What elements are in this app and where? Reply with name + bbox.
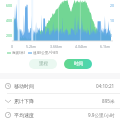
button[interactable]: 累计下降: [0, 94, 120, 108]
staticText: 平均速度: [14, 112, 34, 118]
staticText: 0: [11, 44, 14, 49]
staticText: 海拔(米): [12, 50, 25, 55]
staticText: 速度(公里/小时): [33, 50, 59, 55]
staticText: 600: [6, 3, 13, 8]
button[interactable]: 移动时间: [0, 79, 120, 93]
staticText: 3.66km: [50, 44, 63, 49]
staticText: 6.1km: [100, 44, 111, 49]
staticText: 200: [6, 33, 13, 38]
staticText: 400: [6, 18, 13, 23]
staticText: 10: [110, 18, 115, 23]
staticText: 5.2km: [26, 44, 37, 49]
button[interactable]: 平均速度: [0, 109, 120, 120]
staticText: 20: [110, 3, 115, 8]
staticText: 4.04km: [75, 44, 88, 49]
staticText: 895米: [102, 98, 115, 104]
staticText: 0: [110, 33, 113, 38]
staticText: 04:10:21: [96, 83, 115, 89]
other: 累计下降: [5, 98, 11, 104]
staticText: 9.9公里/小时: [88, 112, 115, 118]
staticText: 移动时间: [14, 83, 34, 89]
button[interactable]: 时间: [64, 59, 92, 69]
other: 移动时间: [5, 83, 11, 89]
button[interactable]: 里程: [29, 59, 57, 69]
staticText: 累计下降: [14, 98, 34, 104]
staticText: 时间: [74, 61, 83, 67]
other: 平均速度: [5, 112, 11, 118]
staticText: 里程: [39, 61, 48, 67]
